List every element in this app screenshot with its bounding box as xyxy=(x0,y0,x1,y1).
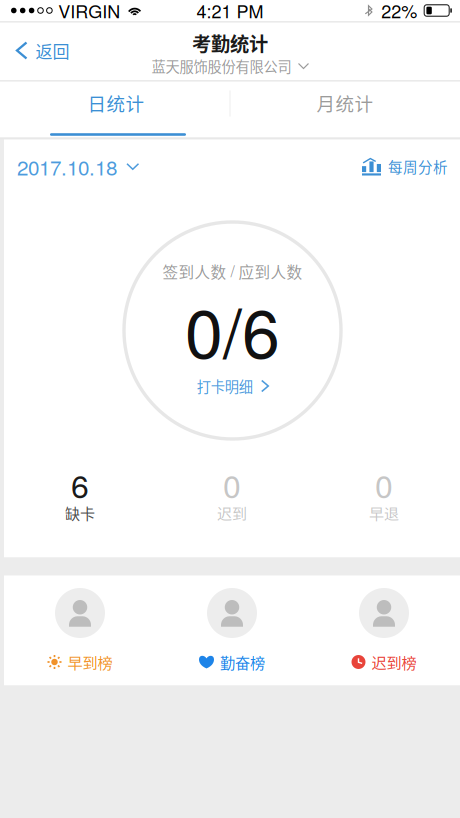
button[interactable]: 勤奋榜 xyxy=(156,575,308,685)
staticText: 迟到 xyxy=(217,502,247,524)
staticText: 4:21 PM xyxy=(196,0,263,23)
staticText: 0/6 xyxy=(185,280,280,378)
staticText: 早退 xyxy=(369,502,399,524)
button[interactable]: 返回 xyxy=(0,30,81,70)
button[interactable]: 日统计 xyxy=(0,81,230,137)
staticText: 勤奋榜 xyxy=(220,651,265,673)
staticText: 蓝天服饰股份有限公司 xyxy=(151,56,291,76)
button[interactable]: 签到人数 / 应到人数 xyxy=(121,219,343,441)
button[interactable]: 每周分析 xyxy=(350,144,460,188)
staticText: 打卡明细 xyxy=(197,376,253,396)
staticText: 考勤统计 xyxy=(192,29,268,57)
staticText: 签到人数 / 应到人数 xyxy=(162,259,302,283)
staticText: 缺卡 xyxy=(65,502,95,524)
button[interactable]: 迟到榜 xyxy=(308,575,460,685)
staticText: 返回 xyxy=(35,38,69,63)
button[interactable]: 早到榜 xyxy=(4,575,156,685)
button[interactable]: 2017.10.18 xyxy=(4,144,150,188)
button[interactable]: 月统计 xyxy=(230,81,460,137)
staticText: 2017.10.18 xyxy=(17,152,117,181)
staticText: VIRGIN xyxy=(58,0,120,23)
staticText: 6 xyxy=(71,462,89,507)
button[interactable]: 蓝天服饰股份有限公司 xyxy=(146,51,313,81)
staticText: 每周分析 xyxy=(388,156,448,177)
staticText: 日统计 xyxy=(87,90,144,116)
staticText: 早到榜 xyxy=(67,651,112,673)
staticText: 迟到榜 xyxy=(371,651,416,673)
staticText: 0 xyxy=(223,462,241,507)
staticText: 月统计 xyxy=(316,90,373,116)
staticText: 22% xyxy=(381,0,417,23)
staticText: 0 xyxy=(375,462,393,507)
